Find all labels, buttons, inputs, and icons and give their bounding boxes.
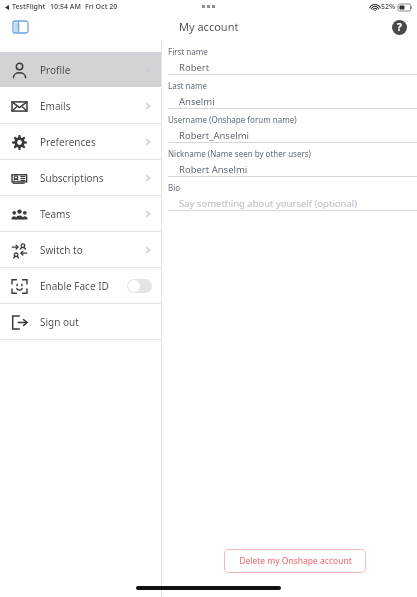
staticText: Subscriptions xyxy=(40,171,104,185)
staticText: Robert xyxy=(179,61,210,74)
staticText: Teams xyxy=(40,207,71,221)
staticText: Robert Anselmi xyxy=(179,163,248,176)
staticText: Say something about yourself (optional) xyxy=(179,197,358,210)
button[interactable]: Sign out xyxy=(0,304,161,339)
staticText: Nickname (Name seen by other users) xyxy=(168,148,311,159)
button[interactable]: Robert xyxy=(179,61,417,74)
staticText: Last name xyxy=(168,80,207,91)
button[interactable]: Anselmi xyxy=(179,95,417,108)
button[interactable]: Toggle sidebar xyxy=(8,15,32,39)
staticText: Sign out xyxy=(40,315,79,329)
button[interactable]: Preferences xyxy=(0,124,161,159)
button[interactable]: Delete my Onshape account xyxy=(224,549,366,573)
button[interactable]: Emails xyxy=(0,88,161,123)
button[interactable]: Subscriptions xyxy=(0,160,161,195)
button[interactable]: Robert Anselmi xyxy=(179,163,417,176)
button[interactable]: Enable Face ID toggle xyxy=(127,279,152,293)
staticText: Bio xyxy=(168,182,181,193)
staticText: Switch to xyxy=(40,243,83,257)
staticText: Profile xyxy=(40,63,71,77)
staticText: Robert_Anselmi xyxy=(179,129,250,142)
button[interactable]: Help xyxy=(388,16,410,38)
staticText: TestFlight xyxy=(12,2,46,12)
staticText: Username (Onshape forum name) xyxy=(168,114,297,125)
staticText: Delete my Onshape account xyxy=(239,555,352,567)
button[interactable]: Profile xyxy=(0,52,161,87)
staticText: ? xyxy=(397,20,402,34)
button[interactable]: Enable Face ID xyxy=(0,268,161,303)
button[interactable]: Robert_Anselmi xyxy=(179,129,417,142)
staticText: Anselmi xyxy=(179,95,215,108)
staticText: First name xyxy=(168,46,208,57)
staticText: Preferences xyxy=(40,135,96,149)
staticText: Enable Face ID xyxy=(40,279,109,293)
button[interactable]: Say something about yourself (optional) xyxy=(179,197,417,210)
button[interactable]: Teams xyxy=(0,196,161,231)
button[interactable]: Switch to xyxy=(0,232,161,267)
staticText: My account xyxy=(179,19,239,34)
staticText: Fri Oct 20 xyxy=(85,2,118,12)
staticText: 52% xyxy=(381,2,396,12)
staticText: 10:54 AM xyxy=(50,2,81,12)
staticText: Emails xyxy=(40,99,71,113)
